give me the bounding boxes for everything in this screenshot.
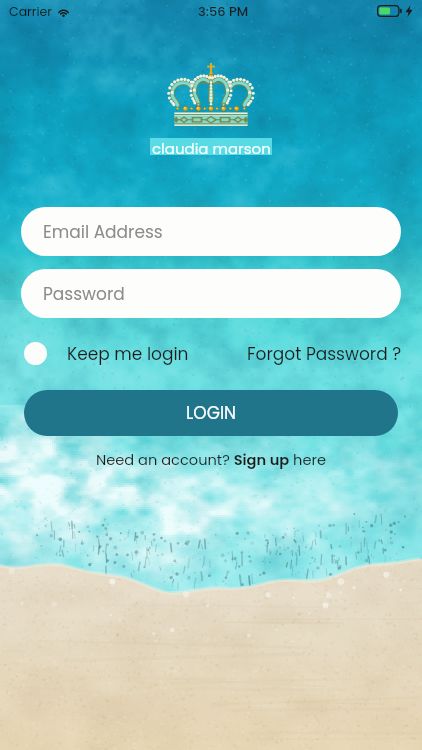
button[interactable]: Need an account? Sign up here bbox=[96, 450, 326, 470]
staticText: claudia marson bbox=[152, 138, 271, 155]
staticText: LOGIN bbox=[186, 401, 237, 425]
staticText: Keep me login bbox=[67, 342, 189, 365]
button[interactable]: LOGIN bbox=[24, 390, 398, 436]
other: Battery bbox=[377, 5, 402, 17]
button[interactable]: Keep me login bbox=[24, 342, 189, 365]
staticText: Email Address bbox=[43, 220, 163, 244]
other: Wi-Fi bbox=[57, 6, 70, 17]
staticText: Carrier bbox=[9, 3, 52, 20]
staticText: 3:56 PM bbox=[198, 2, 249, 20]
button[interactable]: Forgot Password ? bbox=[247, 342, 402, 365]
button[interactable]: Email Address bbox=[21, 207, 401, 256]
staticText: Forgot Password ? bbox=[247, 342, 402, 365]
button[interactable]: Password bbox=[21, 269, 401, 318]
staticText: Need an account? Sign up here bbox=[96, 450, 326, 470]
staticText: Password bbox=[43, 282, 125, 306]
